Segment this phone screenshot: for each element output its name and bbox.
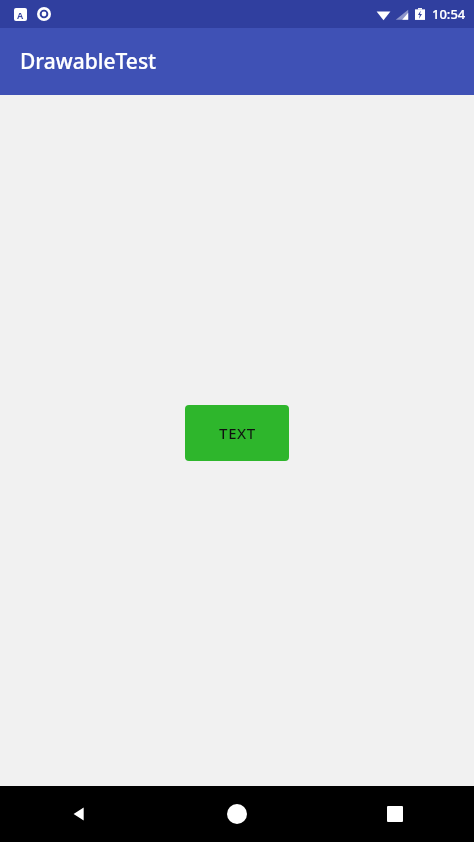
staticText: DrawableTest: [20, 47, 157, 76]
button[interactable]: Back: [0, 786, 158, 842]
button[interactable]: TEXT: [185, 405, 289, 461]
button[interactable]: Recent apps: [316, 786, 474, 842]
staticText: A: [17, 9, 24, 21]
button[interactable]: Home: [158, 786, 316, 842]
staticText: TEXT: [219, 423, 256, 443]
staticText: 10:54: [432, 5, 466, 23]
